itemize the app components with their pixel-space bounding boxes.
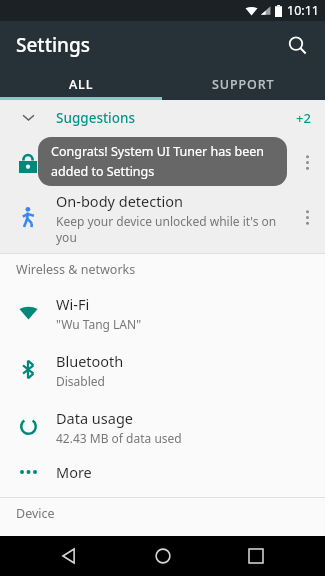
staticText: ALL: [69, 76, 94, 93]
button[interactable]: Recent apps: [232, 536, 280, 576]
button[interactable]: Wi-Fi: [0, 284, 325, 341]
button[interactable]: More options: [289, 135, 325, 190]
staticText: SUPPORT: [212, 76, 275, 93]
staticText: +2: [296, 109, 311, 127]
staticText: Device: [16, 505, 55, 522]
staticText: 10:11: [287, 2, 319, 19]
staticText: Suggestions: [56, 109, 136, 127]
button[interactable]: Search: [277, 25, 317, 65]
staticText: added to Settings: [51, 163, 155, 180]
staticText: 42.43 MB of data used: [56, 430, 182, 446]
staticText: Bluetooth: [56, 351, 124, 371]
staticText: Disabled: [56, 373, 105, 389]
button[interactable]: More options: [289, 190, 325, 245]
button[interactable]: Back: [45, 536, 93, 576]
button[interactable]: More: [0, 455, 325, 489]
button[interactable]: Set screen lock: [0, 135, 325, 190]
staticText: Set screen lock: [56, 144, 158, 164]
staticText: "Wu Tang LAN": [56, 316, 142, 332]
button[interactable]: ALL: [0, 69, 162, 100]
staticText: More: [56, 462, 92, 482]
staticText: On-body detection: [56, 191, 183, 211]
staticText: Congrats! System UI Tuner has been: [51, 143, 264, 160]
staticText: Wi-Fi: [56, 294, 90, 314]
staticText: Wireless & networks: [16, 261, 136, 278]
button[interactable]: Data usage: [0, 398, 325, 455]
staticText: Data usage: [56, 408, 133, 428]
staticText: Keep your device unlocked while it's on …: [56, 213, 289, 245]
staticText: Settings: [16, 32, 90, 58]
button[interactable]: Home: [139, 536, 187, 576]
button[interactable]: Bluetooth: [0, 341, 325, 398]
staticText: Protect your device: [56, 166, 165, 182]
button[interactable]: On-body detection: [0, 190, 325, 245]
button[interactable]: Suggestions: [0, 100, 325, 135]
button[interactable]: SUPPORT: [162, 69, 325, 100]
